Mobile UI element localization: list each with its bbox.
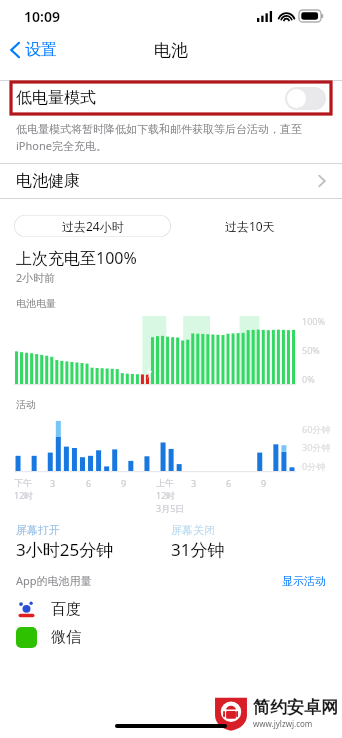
- staticText: 过去24小时: [62, 218, 124, 234]
- staticText: 下午 12时: [14, 477, 34, 501]
- staticText: 微信: [51, 628, 81, 647]
- staticText: www.jylzwj.com: [253, 718, 313, 729]
- staticText: 屏幕打开: [16, 523, 60, 537]
- staticText: 30分钟: [302, 441, 331, 453]
- staticText: 上午 12时 3月5日: [156, 477, 185, 514]
- staticText: 屏幕关闭: [171, 523, 215, 537]
- staticText: 9: [261, 477, 267, 489]
- staticText: 电池电量: [16, 297, 56, 310]
- staticText: 电池健康: [16, 171, 80, 191]
- staticText: 设置: [25, 40, 57, 60]
- staticText: 6: [86, 477, 92, 489]
- other: 低电量模式开关: [285, 87, 326, 110]
- staticText: 电池: [154, 40, 188, 61]
- staticText: 0%: [302, 373, 315, 385]
- staticText: 过去10天: [225, 218, 275, 234]
- staticText: 3: [50, 477, 56, 489]
- staticText: 60分钟: [302, 423, 331, 435]
- staticText: 0分钟: [302, 460, 326, 472]
- staticText: 低电量模式: [16, 88, 96, 108]
- staticText: 6: [226, 477, 232, 489]
- staticText: 2小时前: [16, 270, 56, 285]
- staticText: 显示活动: [282, 574, 326, 588]
- button[interactable]: 电池健康: [0, 164, 342, 198]
- staticText: 上次充电至100%: [16, 247, 137, 269]
- button[interactable]: 百度: [0, 594, 342, 624]
- staticText: 简约安卓网: [253, 697, 338, 718]
- staticText: 50%: [302, 344, 320, 356]
- staticText: App的电池用量: [16, 573, 92, 588]
- button[interactable]: 设置: [0, 36, 67, 64]
- staticText: 9: [121, 477, 127, 489]
- staticText: iPhone完全充电。: [16, 138, 107, 153]
- button[interactable]: 显示活动: [282, 574, 326, 588]
- button[interactable]: 低电量模式: [0, 81, 342, 115]
- staticText: 3小时25分钟: [16, 538, 114, 561]
- button[interactable]: 过去10天: [171, 215, 328, 237]
- button[interactable]: 过去24小时: [14, 215, 171, 237]
- staticText: 10:09: [24, 7, 60, 26]
- button[interactable]: 微信: [0, 624, 342, 650]
- staticText: 百度: [51, 600, 81, 619]
- staticText: 3: [191, 477, 197, 489]
- staticText: 活动: [16, 398, 36, 411]
- staticText: 31分钟: [171, 538, 225, 561]
- staticText: 低电量模式将暂时降低如下载和邮件获取等后台活动，直至: [16, 122, 302, 136]
- staticText: 100%: [302, 315, 325, 327]
